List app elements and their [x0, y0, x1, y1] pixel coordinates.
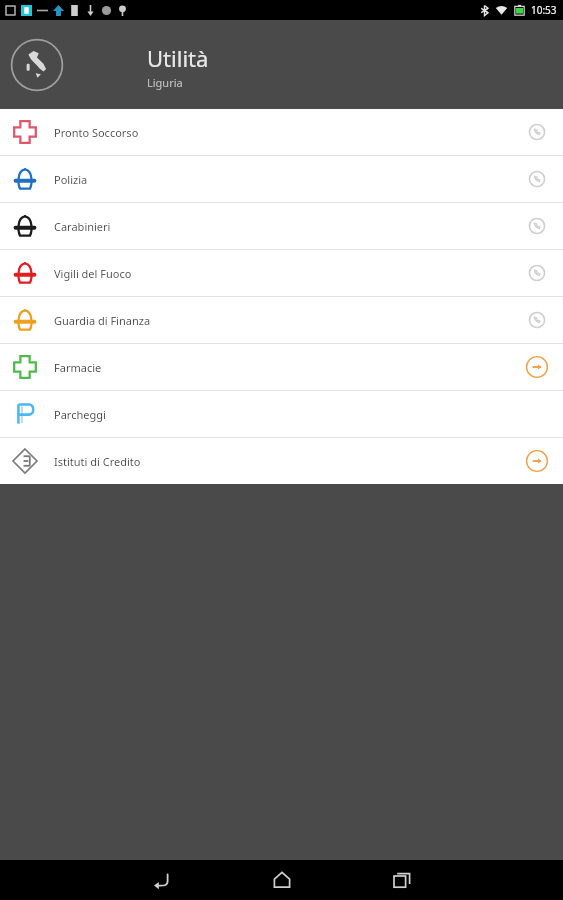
staticText: Vigili del Fuoco: [54, 266, 523, 281]
button[interactable]: Apri: [523, 353, 551, 381]
staticText: Liguria: [147, 75, 183, 90]
staticText: Farmacie: [54, 360, 523, 375]
staticText: Parcheggi: [54, 407, 523, 422]
button[interactable]: Parcheggi: [0, 391, 563, 437]
button[interactable]: Polizia: [0, 156, 563, 202]
button[interactable]: Istituti di Credito: [0, 438, 563, 484]
button[interactable]: Chiama: [523, 118, 551, 146]
button[interactable]: Back: [128, 860, 196, 900]
button[interactable]: Chiama: [523, 259, 551, 287]
staticText: Guardia di Finanza: [54, 313, 523, 328]
staticText: Pronto Soccorso: [54, 125, 523, 140]
button[interactable]: Vigili del Fuoco: [0, 250, 563, 296]
button[interactable]: Chiama: [523, 306, 551, 334]
button[interactable]: Pronto Soccorso: [0, 109, 563, 155]
staticText: Utilità: [147, 43, 209, 73]
staticText: Carabinieri: [54, 219, 523, 234]
button[interactable]: Carabinieri: [0, 203, 563, 249]
staticText: 10:53: [531, 3, 557, 17]
staticText: Istituti di Credito: [54, 454, 523, 469]
button[interactable]: Apri: [523, 447, 551, 475]
staticText: Polizia: [54, 172, 523, 187]
button[interactable]: Guardia di Finanza: [0, 297, 563, 343]
button[interactable]: Chiama: [523, 212, 551, 240]
button[interactable]: Farmacie: [0, 344, 563, 390]
button[interactable]: Recent apps: [368, 860, 436, 900]
button[interactable]: Chiama: [523, 165, 551, 193]
button[interactable]: Home: [248, 860, 316, 900]
button[interactable]: Regione: [10, 38, 64, 92]
